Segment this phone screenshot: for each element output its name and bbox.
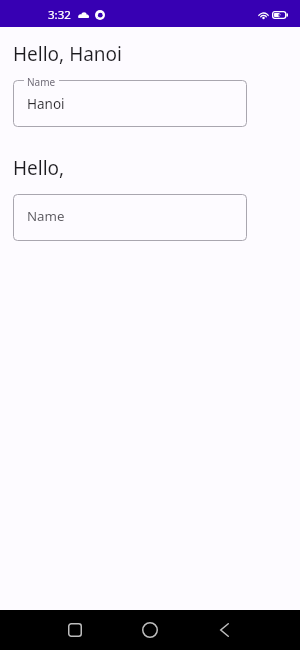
button[interactable]: Back bbox=[187, 610, 262, 650]
staticText: Name bbox=[27, 75, 56, 89]
button[interactable]: Name bbox=[13, 80, 247, 127]
staticText: Hello, bbox=[13, 155, 65, 181]
button[interactable]: Name bbox=[13, 194, 247, 241]
staticText: Name bbox=[27, 207, 65, 225]
staticText: Hanoi bbox=[27, 95, 65, 113]
staticText: 3:32 bbox=[48, 7, 71, 23]
button[interactable]: Home bbox=[112, 610, 187, 650]
button[interactable]: Recent apps bbox=[38, 610, 112, 650]
staticText: Hello, Hanoi bbox=[13, 41, 123, 67]
